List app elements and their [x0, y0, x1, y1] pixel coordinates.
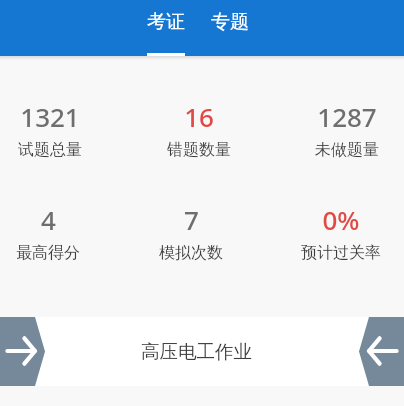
staticText: 16: [184, 99, 214, 134]
button[interactable]: 专题: [202, 0, 258, 44]
staticText: 0%: [322, 202, 360, 237]
staticText: 预计过关率: [301, 243, 381, 263]
button[interactable]: Previous subject: [359, 317, 404, 386]
staticText: 4: [41, 202, 56, 237]
staticText: 7: [184, 202, 199, 237]
button[interactable]: 高压电工作业: [0, 317, 404, 386]
button[interactable]: 16: [137, 99, 261, 160]
staticText: 考证: [147, 10, 185, 34]
staticText: 错题数量: [167, 140, 231, 160]
staticText: 最高得分: [16, 243, 80, 263]
staticText: 1321: [20, 99, 80, 134]
staticText: 模拟次数: [159, 243, 223, 263]
staticText: 专题: [211, 10, 249, 34]
button[interactable]: 7: [129, 202, 253, 263]
button[interactable]: 4: [0, 202, 110, 263]
button[interactable]: 1287: [285, 99, 404, 160]
staticText: 1287: [317, 99, 377, 134]
button[interactable]: 考证: [138, 0, 194, 44]
staticText: 高压电工作业: [141, 340, 252, 363]
button[interactable]: 0%: [279, 202, 403, 263]
staticText: 未做题量: [315, 140, 379, 160]
button[interactable]: Next subject: [0, 317, 45, 386]
button[interactable]: 1321: [0, 99, 112, 160]
staticText: 试题总量: [18, 140, 82, 160]
